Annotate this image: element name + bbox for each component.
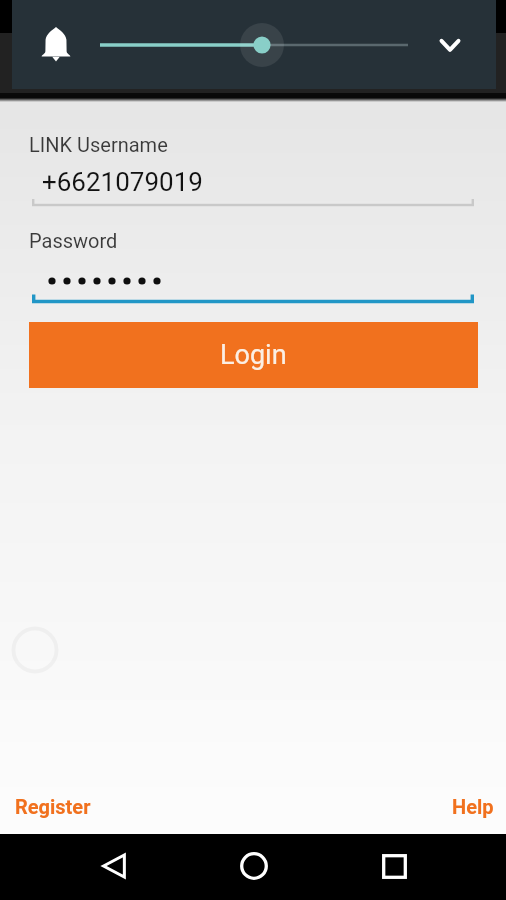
button[interactable]: Notification volume [36, 24, 76, 64]
button[interactable]: Expand volume controls [430, 25, 470, 65]
staticText: Help [452, 795, 494, 818]
button[interactable]: Register [12, 791, 94, 822]
staticText: LINK Username [29, 133, 168, 156]
staticText: Login [220, 339, 287, 371]
button[interactable]: Notification volume slider [90, 25, 420, 65]
staticText: +6621079019 [42, 167, 203, 197]
button[interactable]: Back [92, 843, 138, 889]
button[interactable]: Login [29, 322, 478, 388]
button[interactable]: Home [231, 843, 277, 889]
staticText: Register [15, 795, 91, 818]
staticText: Password [29, 229, 118, 252]
button[interactable]: Help [449, 791, 497, 822]
button[interactable]: Recent apps [371, 843, 417, 889]
